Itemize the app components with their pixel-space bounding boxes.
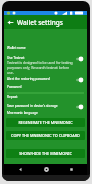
staticText: Wallet settings <box>17 18 64 27</box>
staticText: Wallet name <box>7 46 26 50</box>
staticText: REGENERATE THE MNEMONIC <box>18 120 73 125</box>
button[interactable]: Back <box>4 16 17 29</box>
staticText: Testnet is designed to be used for testi… <box>7 60 73 75</box>
button[interactable]: REGENERATE THE MNEMONIC <box>6 118 85 127</box>
staticText: Save password in device's storage <box>7 104 58 108</box>
staticText: SHOW/HIDE THE MNEMONIC <box>19 151 72 156</box>
button[interactable]: Save password in device's storage <box>4 104 87 110</box>
button[interactable]: SHOW/HIDE THE MNEMONIC <box>6 149 85 158</box>
button[interactable]: COPY THE MNEMONIC TO CLIPBOARD <box>6 131 85 140</box>
button[interactable]: Alert the restoring password <box>4 77 87 83</box>
button[interactable]: Use Testnet <box>4 56 87 75</box>
staticText: Alert the restoring password <box>7 77 50 81</box>
staticText: Use Testnet <box>7 56 25 60</box>
staticText: Repeat <box>7 95 18 99</box>
button[interactable]: Back <box>11 164 29 175</box>
button[interactable]: Recent apps <box>62 164 80 175</box>
button[interactable]: Home <box>37 164 55 175</box>
staticText: COPY THE MNEMONIC TO CLIPBOARD <box>11 133 80 138</box>
staticText: Password <box>7 85 22 89</box>
staticText: Mnemonic language <box>7 111 38 115</box>
